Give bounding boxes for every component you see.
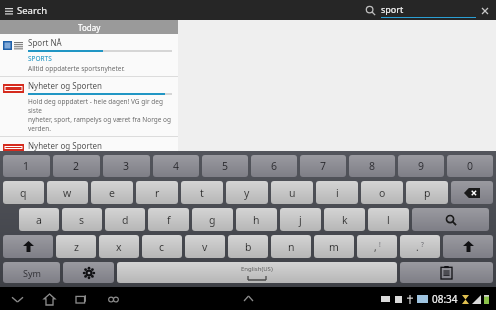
button[interactable]: m xyxy=(314,235,354,258)
staticText: x xyxy=(116,240,122,254)
button[interactable]: 8 xyxy=(349,155,395,177)
button[interactable]: Search xyxy=(365,3,490,18)
staticText: v xyxy=(202,240,208,254)
staticText: sport xyxy=(381,3,404,15)
button[interactable]: Menu xyxy=(3,2,50,19)
staticText: Nyheter og Sporten xyxy=(28,140,103,151)
button[interactable]: Expand xyxy=(240,292,257,305)
button[interactable]: e xyxy=(91,181,133,204)
button[interactable]: 7 xyxy=(300,155,346,177)
staticText: z xyxy=(74,240,79,254)
staticText: Hold deg oppdatert - hele dagen! VG gir … xyxy=(28,97,172,115)
button[interactable]: English(US) xyxy=(117,262,397,283)
staticText: j xyxy=(299,213,302,227)
staticText: 8 xyxy=(369,159,376,173)
button[interactable]: 0 xyxy=(447,155,493,177)
staticText: w xyxy=(63,186,72,200)
staticText: Search xyxy=(17,4,48,17)
staticText: a xyxy=(36,213,42,227)
staticText: 0 xyxy=(467,159,474,173)
button[interactable]: Shift xyxy=(443,235,493,258)
button[interactable]: 2 xyxy=(53,155,100,177)
staticText: English(US) xyxy=(241,265,273,273)
staticText: 4 xyxy=(173,159,180,173)
button[interactable]: 1 xyxy=(3,155,50,177)
button[interactable]: u xyxy=(271,181,313,204)
button[interactable]: d xyxy=(105,208,145,231)
button[interactable]: Recents xyxy=(72,290,90,308)
staticText: f xyxy=(167,213,171,227)
button[interactable]: r xyxy=(136,181,178,204)
staticText: l xyxy=(387,213,390,227)
staticText: 08:34 xyxy=(432,292,458,306)
button[interactable]: f xyxy=(148,208,189,231)
button[interactable]: p xyxy=(406,181,448,204)
button[interactable]: z xyxy=(56,235,96,258)
button[interactable]: 9 xyxy=(398,155,444,177)
button[interactable]: , xyxy=(357,235,397,258)
button[interactable]: k xyxy=(324,208,365,231)
button[interactable]: Screenshot xyxy=(104,290,122,308)
staticText: m xyxy=(329,240,339,254)
button[interactable]: g xyxy=(192,208,233,231)
button[interactable]: Shift xyxy=(3,235,53,258)
button[interactable]: y xyxy=(226,181,268,204)
button[interactable]: 6 xyxy=(251,155,297,177)
staticText: . xyxy=(416,240,419,254)
button[interactable]: Backspace xyxy=(451,181,493,204)
button[interactable]: t xyxy=(181,181,223,204)
button[interactable]: Back xyxy=(8,290,26,308)
button[interactable]: Nyheter og Sporten xyxy=(0,137,178,151)
staticText: g xyxy=(209,213,216,227)
button[interactable]: w xyxy=(47,181,88,204)
staticText: e xyxy=(109,186,115,200)
staticText: i xyxy=(336,186,339,200)
button[interactable]: b xyxy=(228,235,268,258)
staticText: 9 xyxy=(418,159,425,173)
button[interactable]: 5 xyxy=(202,155,248,177)
staticText: Sport NÅ xyxy=(28,37,62,48)
button[interactable]: n xyxy=(271,235,311,258)
button[interactable]: a xyxy=(19,208,59,231)
button[interactable]: Search xyxy=(412,208,489,231)
button[interactable]: q xyxy=(3,181,44,204)
staticText: o xyxy=(379,186,386,200)
staticText: Today xyxy=(78,22,101,33)
staticText: , xyxy=(374,240,377,254)
staticText: y xyxy=(244,186,250,200)
button[interactable]: Nyheter og Sporten xyxy=(0,77,178,137)
button[interactable]: 3 xyxy=(103,155,150,177)
staticText: 2 xyxy=(73,159,80,173)
button[interactable]: c xyxy=(142,235,182,258)
staticText: u xyxy=(289,186,296,200)
staticText: 6 xyxy=(271,159,278,173)
other: Search xyxy=(365,5,376,16)
button[interactable]: . xyxy=(400,235,440,258)
staticText: SPORTS xyxy=(28,54,52,63)
staticText: Alltid oppdaterte sportsnyheter. xyxy=(28,64,125,73)
button[interactable]: Clipboard xyxy=(400,262,493,283)
button[interactable]: Sport NÅ xyxy=(0,34,178,77)
button[interactable]: o xyxy=(361,181,403,204)
staticText: ! xyxy=(379,240,381,249)
staticText: b xyxy=(245,240,252,254)
other: Keyboard xyxy=(381,295,390,304)
button[interactable]: s xyxy=(62,208,102,231)
button[interactable]: l xyxy=(368,208,409,231)
button[interactable]: j xyxy=(280,208,321,231)
button[interactable]: 4 xyxy=(153,155,199,177)
staticText: h xyxy=(253,213,260,227)
button[interactable]: x xyxy=(99,235,139,258)
staticText: Nyheter og Sporten xyxy=(28,80,103,91)
button[interactable]: h xyxy=(236,208,277,231)
staticText: nyheter, sport, rampelys og været fra No… xyxy=(28,115,172,133)
button[interactable]: i xyxy=(316,181,358,204)
button[interactable]: Clear xyxy=(480,6,490,16)
button[interactable]: Settings xyxy=(63,262,114,283)
staticText: r xyxy=(155,186,160,200)
staticText: 1 xyxy=(23,159,30,173)
button[interactable]: Home xyxy=(40,290,58,308)
button[interactable]: v xyxy=(185,235,225,258)
button[interactable]: Sym xyxy=(3,262,60,283)
staticText: p xyxy=(424,186,431,200)
